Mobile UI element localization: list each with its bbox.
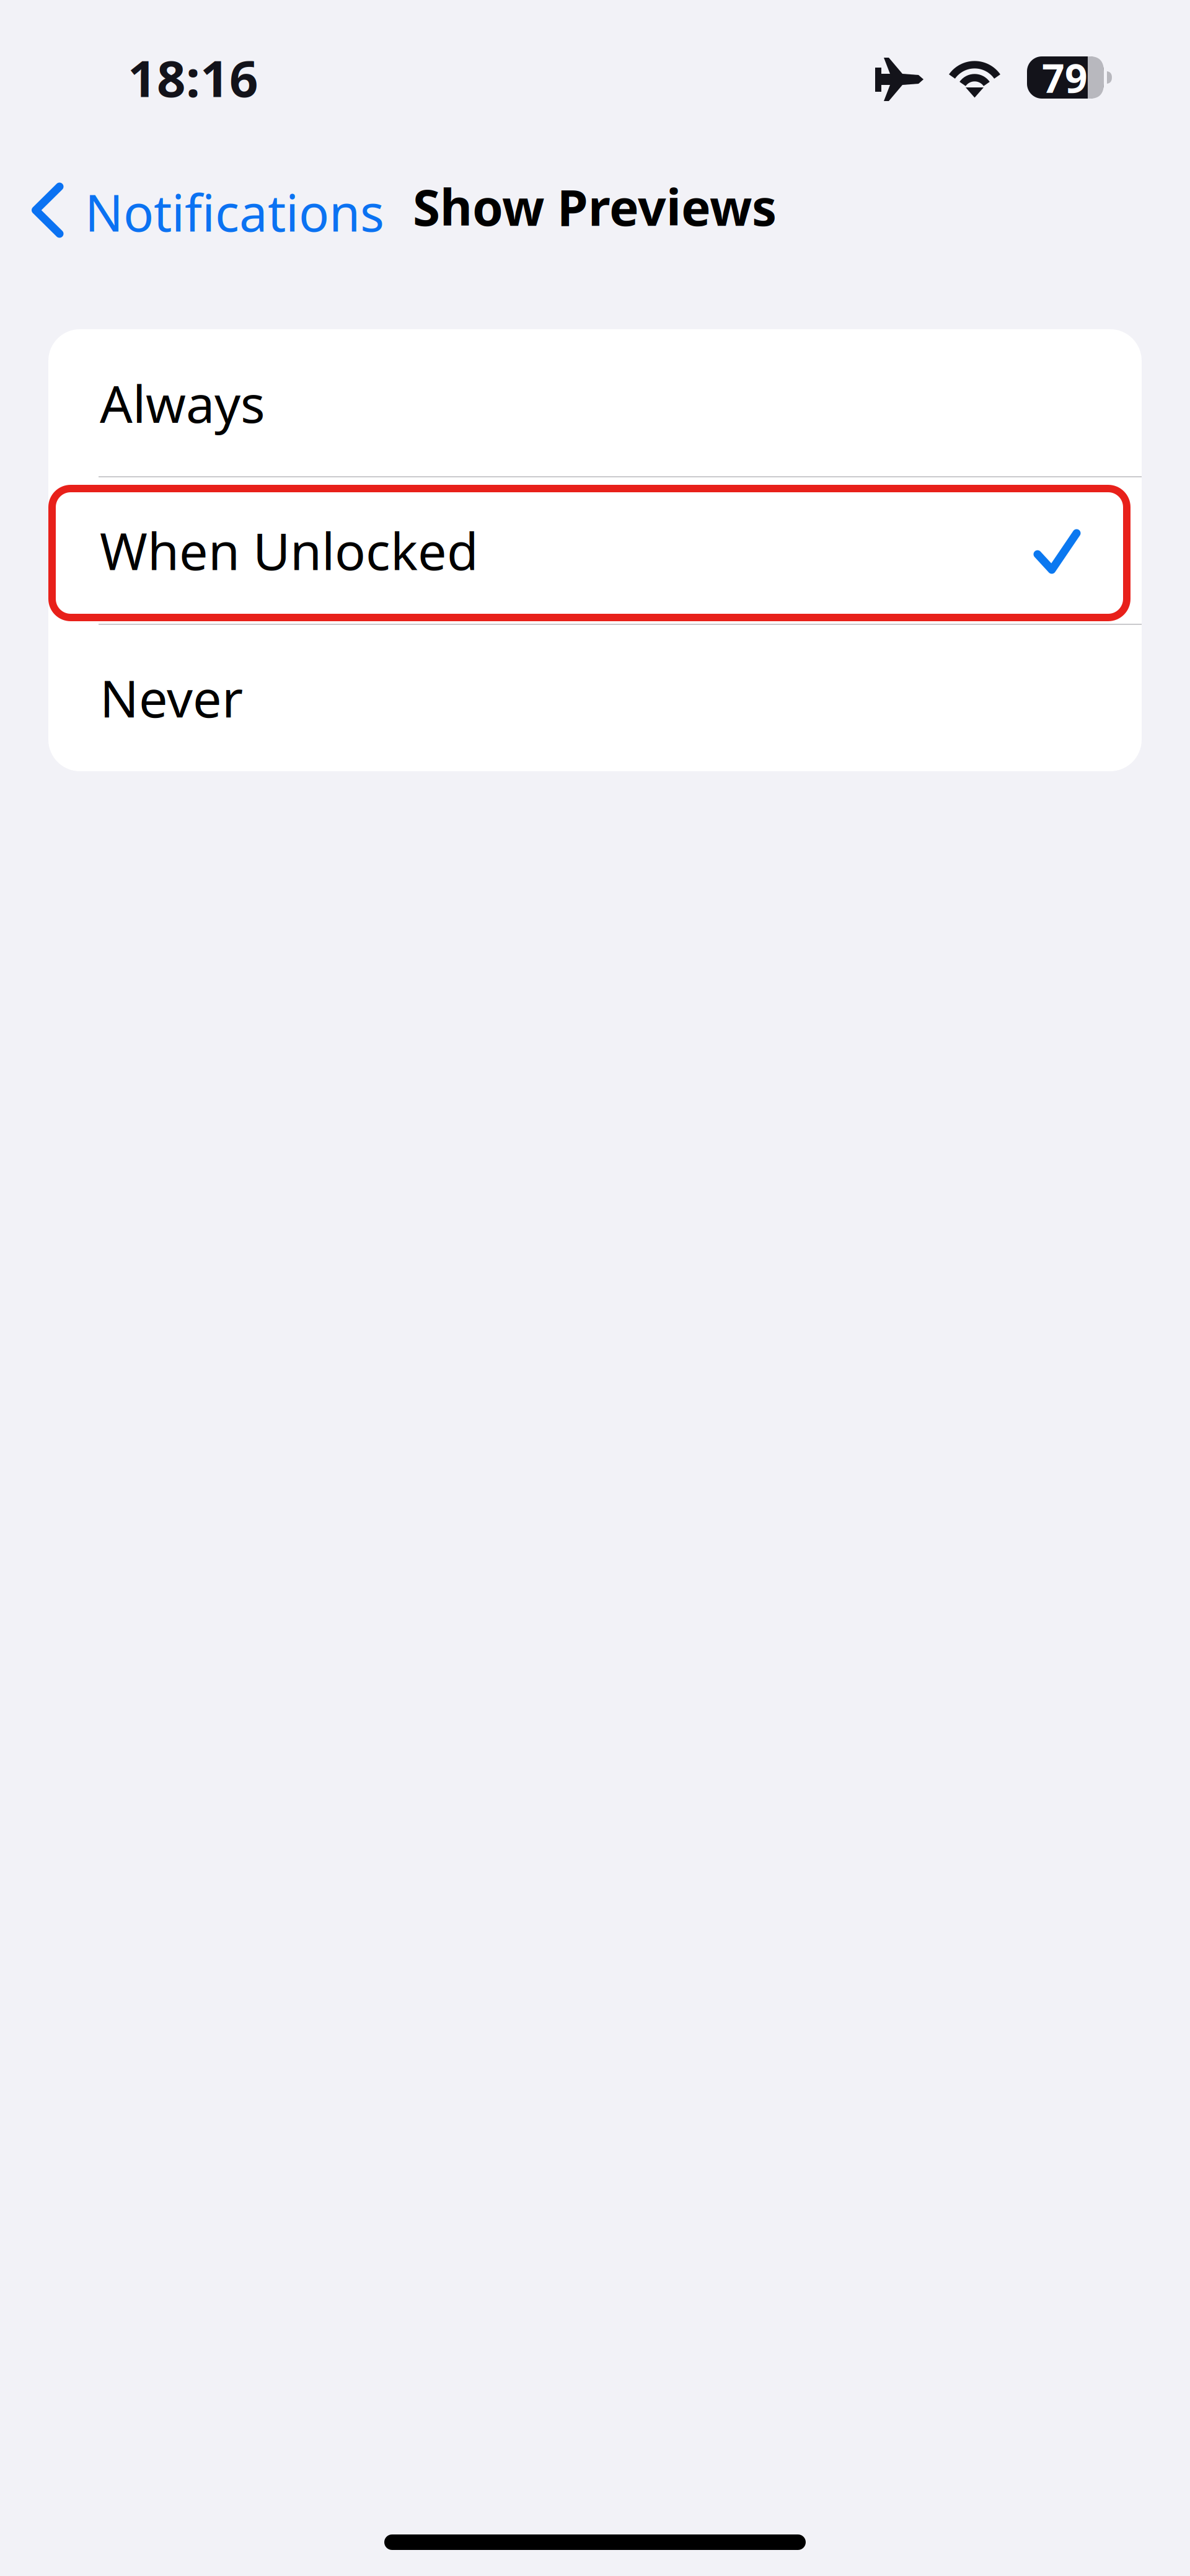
staticText: When Unlocked: [100, 516, 478, 584]
staticText: 79: [1042, 51, 1088, 104]
staticText: Always: [100, 369, 265, 437]
button[interactable]: Always: [48, 329, 1142, 477]
button[interactable]: Never: [48, 624, 1142, 771]
staticText: Notifications: [85, 179, 384, 246]
button[interactable]: When Unlocked: [48, 477, 1142, 624]
button[interactable]: Back to Notifications: [32, 179, 385, 241]
staticText: Show Previews: [413, 174, 777, 239]
staticText: 18:16: [128, 44, 258, 111]
staticText: Never: [100, 663, 243, 732]
